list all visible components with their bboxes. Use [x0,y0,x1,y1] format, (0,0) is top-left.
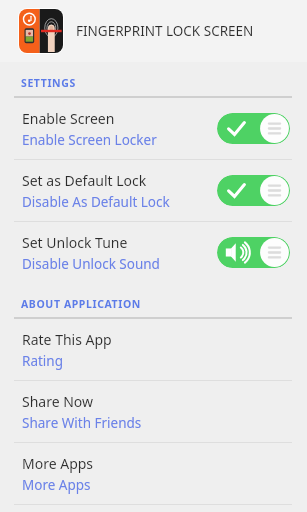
staticText: FINGERPRINT LOCK SCREEN [76,22,254,40]
staticText: Share Now [22,392,94,411]
button[interactable]: Set Unlock Tune [0,222,307,283]
button[interactable]: Toggle unlock sound [217,237,290,268]
staticText: Rate This App [22,330,112,349]
staticText: Share With Friends [22,414,142,432]
staticText: More Apps [22,476,91,494]
staticText: Disable Unlock Sound [22,255,160,273]
button[interactable]: Toggle setting [217,113,290,144]
button[interactable]: Set as Default Lock [0,160,307,221]
staticText: SETTINGS [21,76,76,90]
button[interactable]: Rate This App [0,319,307,380]
staticText: ABOUT APPLICATION [21,297,141,311]
button[interactable]: Share Now [0,381,307,442]
staticText: Enable Screen [22,109,115,128]
staticText: More Apps [22,454,94,473]
staticText: Set Unlock Tune [22,233,128,252]
staticText: Set as Default Lock [22,171,147,190]
staticText: Enable Screen Locker [22,131,157,149]
button[interactable]: Toggle setting [217,175,290,206]
button[interactable]: Enable Screen [0,98,307,159]
staticText: Disable As Default Lock [22,193,170,211]
staticText: Rating [22,352,63,370]
button[interactable]: More Apps [0,443,307,504]
